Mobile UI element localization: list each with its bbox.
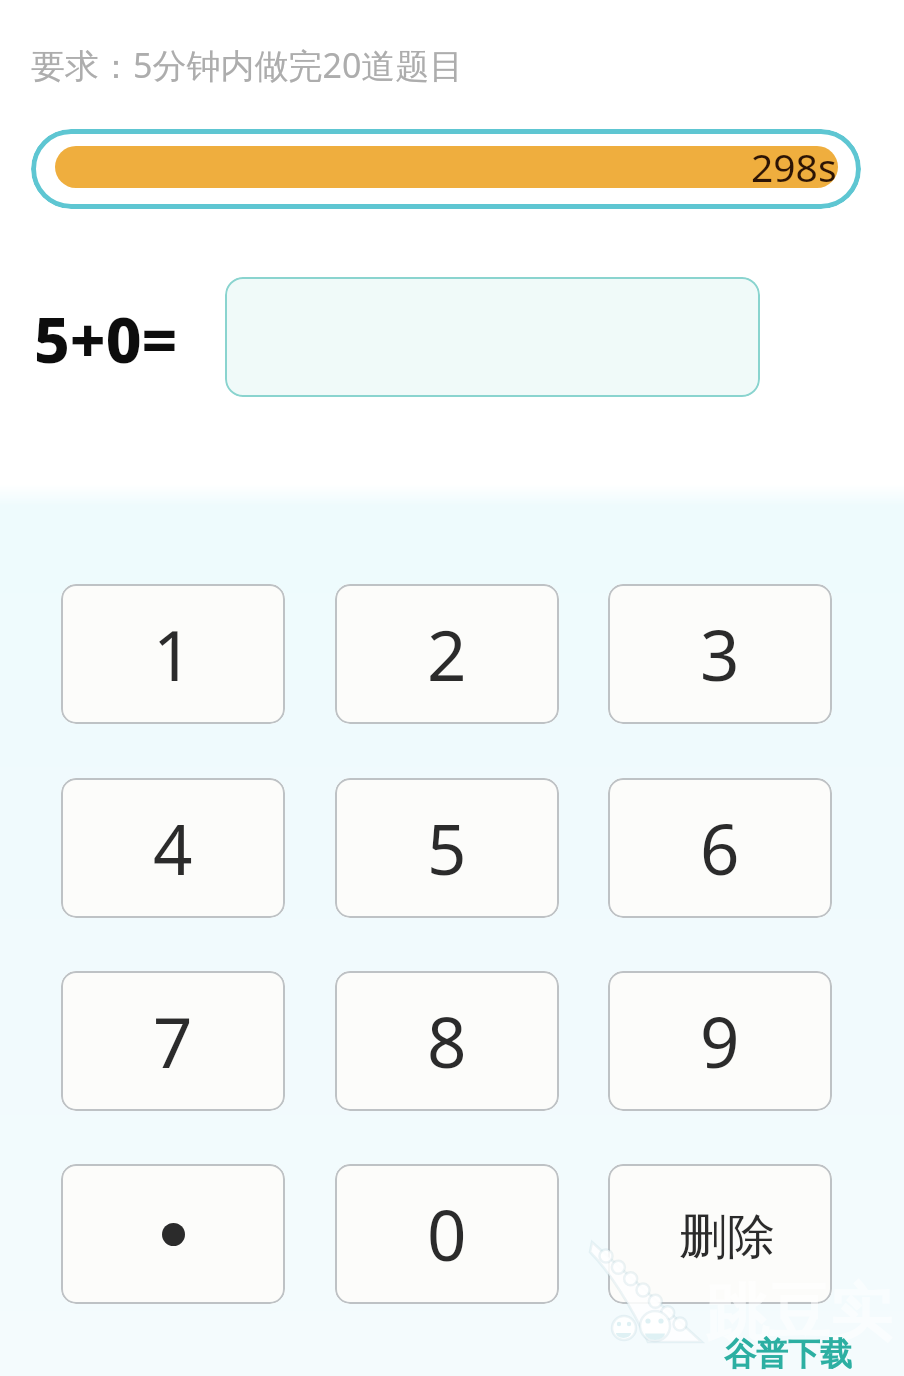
staticText: 0 <box>427 1187 467 1281</box>
other: Remaining time 298 seconds <box>31 129 861 209</box>
staticText: 6 <box>700 801 740 895</box>
button[interactable]: 8 <box>335 971 559 1111</box>
staticText: 8 <box>427 994 467 1088</box>
button[interactable]: 9 <box>608 971 832 1111</box>
staticText: 2 <box>427 607 467 701</box>
staticText: 5 <box>427 801 467 895</box>
staticText: 跳豆实 <box>706 1274 892 1352</box>
button[interactable]: 6 <box>608 778 832 918</box>
button[interactable]: Decimal point <box>61 1164 285 1304</box>
staticText: 7 <box>153 994 193 1088</box>
staticText: 删除 <box>679 1207 775 1267</box>
staticText: 298s <box>751 146 837 182</box>
button[interactable]: 7 <box>61 971 285 1111</box>
staticText: 谷普下载 <box>724 1334 852 1374</box>
staticText: 要求：5分钟内做完20道题目 <box>31 42 464 88</box>
button[interactable]: 1 <box>61 584 285 724</box>
button[interactable]: Answer input field <box>225 277 760 397</box>
button[interactable]: 2 <box>335 584 559 724</box>
staticText: 4 <box>153 801 193 895</box>
button[interactable]: 4 <box>61 778 285 918</box>
staticText: 1 <box>153 607 193 701</box>
button[interactable]: 3 <box>608 584 832 724</box>
button[interactable]: 0 <box>335 1164 559 1304</box>
staticText: 3 <box>700 607 740 701</box>
button[interactable]: 5 <box>335 778 559 918</box>
button[interactable]: Delete <box>608 1164 832 1304</box>
staticText: 5+0= <box>34 297 178 381</box>
staticText: 9 <box>700 994 740 1088</box>
